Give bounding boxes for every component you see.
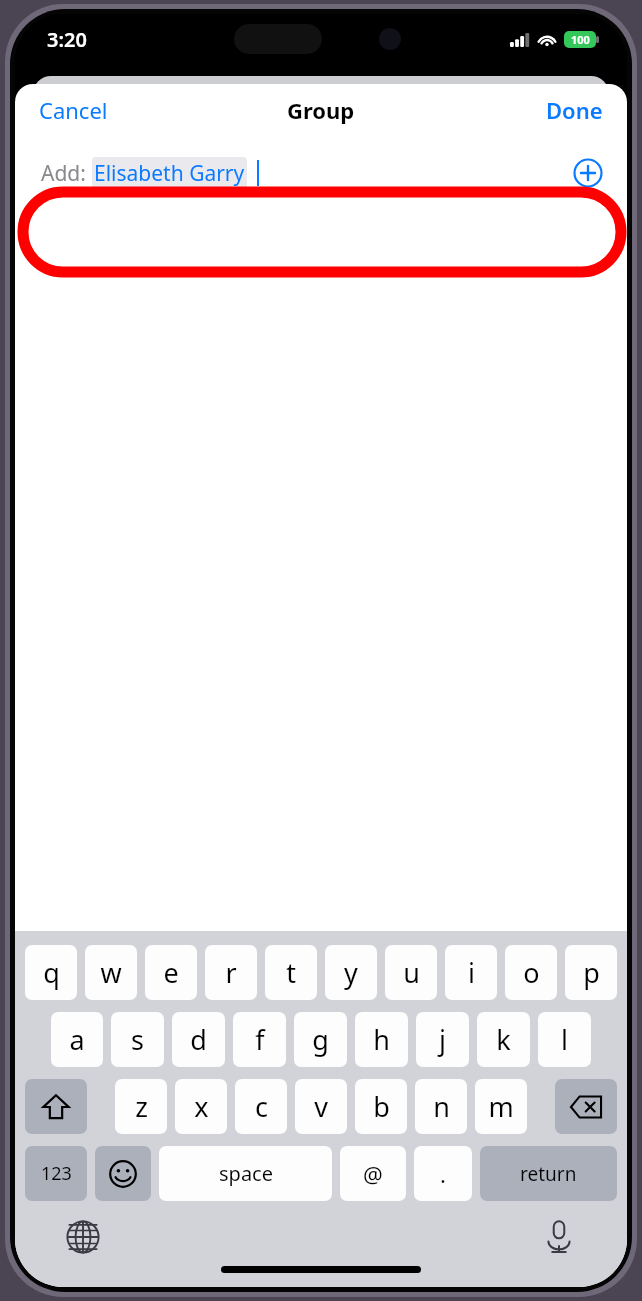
button[interactable]: e (145, 945, 197, 1000)
button[interactable]: v (295, 1079, 347, 1134)
staticText: Cancel (39, 95, 108, 125)
button[interactable]: y (325, 945, 377, 1000)
staticText: t (286, 954, 296, 991)
staticText: e (163, 954, 179, 991)
button[interactable]: Emoji (95, 1146, 151, 1201)
button[interactable]: . (414, 1146, 472, 1201)
button[interactable]: b (355, 1079, 407, 1134)
button[interactable]: j (416, 1012, 469, 1067)
staticText: d (190, 1021, 207, 1058)
staticText: 100 (571, 32, 590, 47)
button[interactable]: d (172, 1012, 225, 1067)
staticText: Elisabeth Garry (94, 159, 245, 188)
button[interactable]: Add: (15, 136, 627, 210)
button[interactable]: a (51, 1012, 103, 1067)
button[interactable]: n (415, 1079, 467, 1134)
button[interactable]: r (205, 945, 257, 1000)
staticText: v (314, 1088, 328, 1125)
staticText: q (43, 954, 60, 991)
staticText: Done (546, 95, 603, 125)
staticText: r (225, 954, 237, 991)
button[interactable]: Backspace (555, 1079, 617, 1134)
button[interactable]: g (294, 1012, 347, 1067)
staticText: i (468, 954, 475, 991)
button[interactable]: p (565, 945, 617, 1000)
staticText: 3:20 (47, 26, 87, 53)
button[interactable]: space (159, 1146, 332, 1201)
staticText: u (403, 954, 420, 991)
button[interactable]: c (235, 1079, 287, 1134)
button[interactable]: s (111, 1012, 164, 1067)
button[interactable]: w (85, 945, 137, 1000)
staticText: f (255, 1021, 265, 1058)
staticText: space (219, 1160, 273, 1187)
staticText: p (583, 954, 600, 991)
button[interactable]: q (25, 945, 77, 1000)
button[interactable]: k (477, 1012, 530, 1067)
staticText: n (433, 1088, 450, 1125)
staticText: return (520, 1161, 577, 1187)
staticText: k (496, 1021, 511, 1058)
button[interactable]: Dictate (537, 1215, 581, 1259)
staticText: z (135, 1088, 148, 1125)
staticText: h (373, 1021, 390, 1058)
button[interactable]: Add contact (571, 156, 605, 190)
staticText: o (523, 954, 540, 991)
button[interactable]: @ (340, 1146, 406, 1201)
staticText: j (439, 1021, 446, 1058)
staticText: @ (363, 1159, 383, 1189)
staticText: 123 (41, 1161, 72, 1186)
staticText: b (373, 1088, 390, 1125)
button[interactable]: t (265, 945, 317, 1000)
button[interactable]: x (175, 1079, 227, 1134)
staticText: Add: (41, 159, 92, 188)
staticText: a (69, 1021, 85, 1058)
button[interactable]: Done (530, 87, 627, 133)
button[interactable]: u (385, 945, 437, 1000)
button[interactable]: o (505, 945, 557, 1000)
staticText: . (440, 1159, 446, 1189)
button[interactable]: Change keyboard (61, 1215, 105, 1259)
staticText: c (255, 1088, 268, 1125)
staticText: y (344, 954, 358, 991)
button[interactable]: Shift (25, 1079, 87, 1134)
button[interactable]: l (538, 1012, 591, 1067)
staticText: s (131, 1021, 144, 1058)
button[interactable]: i (445, 945, 497, 1000)
button[interactable]: h (355, 1012, 408, 1067)
button[interactable]: return (480, 1146, 617, 1201)
staticText: Group (287, 95, 355, 125)
staticText: m (488, 1088, 514, 1125)
button[interactable]: Cancel (15, 87, 124, 133)
button[interactable]: m (475, 1079, 527, 1134)
button[interactable]: f (233, 1012, 286, 1067)
staticText: w (100, 954, 122, 991)
staticText: x (194, 1088, 209, 1125)
button[interactable]: z (115, 1079, 167, 1134)
staticText: l (561, 1021, 568, 1058)
staticText: g (312, 1021, 329, 1058)
button[interactable]: 123 (25, 1146, 87, 1201)
